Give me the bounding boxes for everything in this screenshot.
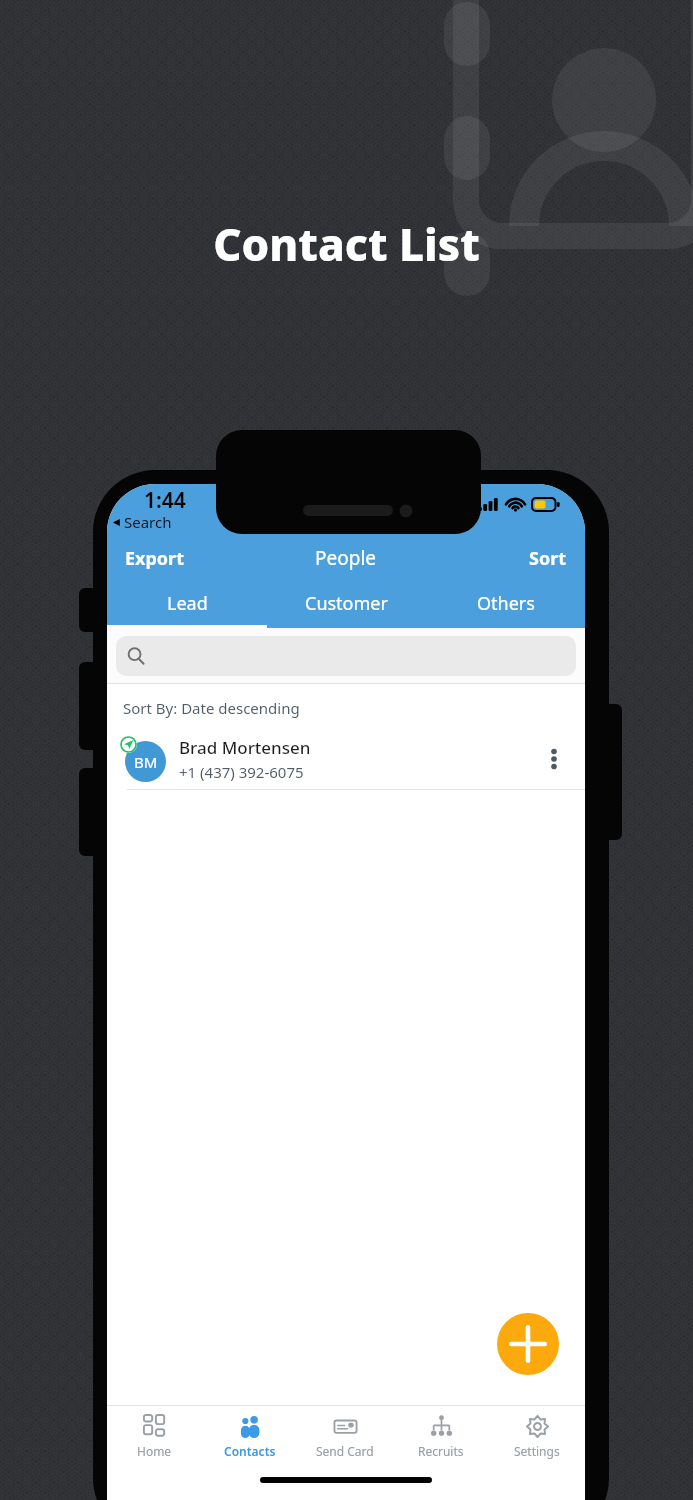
button[interactable]: BM <box>107 729 585 790</box>
staticText: Lead <box>167 591 208 616</box>
staticText: BM <box>134 752 158 772</box>
staticText: Others <box>477 591 535 616</box>
staticText: Export <box>125 546 184 571</box>
staticText: Sort By: Date descending <box>123 698 300 718</box>
button[interactable]: Add contact <box>497 1313 559 1375</box>
button[interactable]: Lead <box>107 582 267 628</box>
button[interactable]: Settings <box>489 1406 585 1468</box>
button[interactable]: Recruits <box>393 1406 489 1468</box>
staticText: 1:44 <box>144 486 186 515</box>
staticText: Contacts <box>224 1443 276 1459</box>
staticText: Home <box>137 1443 172 1459</box>
staticText: People <box>315 545 377 571</box>
button[interactable]: More options <box>537 742 571 776</box>
button[interactable]: Contacts <box>202 1406 297 1468</box>
button[interactable]: Send Card <box>297 1406 393 1468</box>
button[interactable]: Sort <box>517 538 585 579</box>
staticText: +1 (437) 392-6075 <box>179 762 304 782</box>
button[interactable] <box>116 636 576 676</box>
staticText: Recruits <box>418 1443 464 1459</box>
staticText: Sort <box>529 546 567 571</box>
staticText: Customer <box>305 591 388 616</box>
button[interactable]: Home <box>107 1406 202 1468</box>
staticText: Contact List <box>0 214 693 274</box>
staticText: Settings <box>514 1443 560 1459</box>
staticText: Send Card <box>316 1443 374 1459</box>
button[interactable]: Others <box>426 582 585 628</box>
button[interactable]: Customer <box>267 582 426 628</box>
staticText: Brad Mortensen <box>179 736 311 759</box>
staticText: Search <box>124 512 172 532</box>
button[interactable]: Export <box>107 538 196 579</box>
